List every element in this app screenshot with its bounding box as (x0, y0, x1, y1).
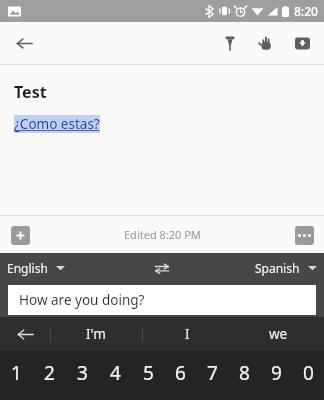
staticText: 2 (44, 360, 55, 386)
staticText: 7 (207, 360, 218, 386)
button[interactable]: Spanish (255, 260, 317, 276)
button[interactable]: I'm (50, 317, 142, 351)
button[interactable]: 4 (99, 351, 132, 400)
button[interactable]: Reminder (248, 25, 284, 61)
button[interactable]: 2 (33, 351, 66, 400)
staticText: Spanish (255, 260, 300, 276)
staticText: I'm (86, 325, 106, 343)
staticText: 4 (110, 360, 121, 386)
staticText: Test (14, 81, 47, 103)
staticText: 6 (175, 360, 186, 386)
button[interactable]: ¿Como estas? (14, 115, 100, 133)
button[interactable]: 5 (132, 351, 164, 400)
staticText: 1 (11, 360, 22, 386)
button[interactable]: 1 (0, 351, 33, 400)
button[interactable]: 0 (292, 351, 324, 400)
button[interactable]: English (7, 260, 65, 276)
staticText: 8:20 (294, 3, 318, 19)
button[interactable]: Back (6, 25, 42, 61)
button[interactable]: we (233, 317, 324, 351)
staticText: 9 (271, 360, 282, 386)
staticText: 8 (239, 360, 250, 386)
button[interactable]: 7 (196, 351, 228, 400)
staticText: How are you doing? (19, 291, 145, 309)
staticText: I (185, 325, 190, 343)
button[interactable]: How are you doing? (8, 285, 316, 315)
staticText: we (269, 325, 288, 343)
staticText: 3 (77, 360, 88, 386)
button[interactable]: 9 (260, 351, 292, 400)
button[interactable]: 3 (66, 351, 99, 400)
button[interactable]: 8 (228, 351, 260, 400)
staticText: 0 (303, 360, 314, 386)
button[interactable]: I (142, 317, 233, 351)
staticText: English (7, 260, 48, 276)
staticText: 5 (143, 360, 154, 386)
button[interactable]: 6 (164, 351, 196, 400)
button[interactable]: Back (0, 317, 50, 351)
button[interactable]: Add (5, 220, 35, 250)
staticText: Edited 8:20 PM (124, 227, 201, 242)
button[interactable]: Pin (212, 25, 248, 61)
button[interactable]: Swap languages (147, 253, 177, 283)
button[interactable]: More options (289, 220, 319, 250)
button[interactable]: Archive (284, 25, 320, 61)
staticText: ¿Como estas? (14, 115, 100, 133)
